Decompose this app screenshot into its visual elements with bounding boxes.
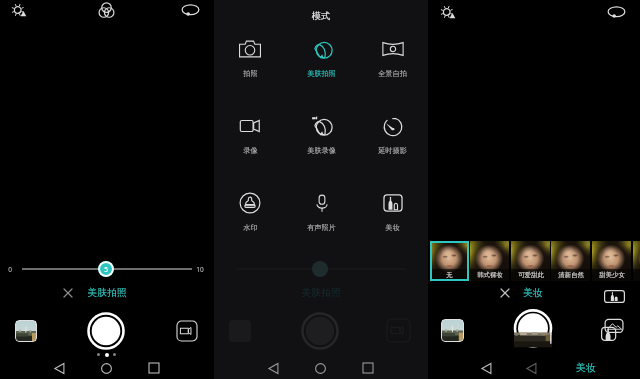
button[interactable]: Back xyxy=(51,360,67,376)
button[interactable]: Panorama mode xyxy=(180,0,201,21)
button[interactable]: Flash auto xyxy=(8,0,29,21)
staticText: 美肤拍照 xyxy=(307,69,336,78)
button[interactable]: Beauty level 5 xyxy=(98,261,114,277)
staticText: 5 xyxy=(104,265,108,274)
button[interactable]: Close beauty mode xyxy=(60,285,76,301)
button[interactable]: 美妆 xyxy=(523,287,543,299)
button[interactable]: 美妆 xyxy=(357,192,428,236)
staticText: 0 xyxy=(8,265,12,274)
button[interactable]: 录像 xyxy=(214,115,286,159)
staticText: 美妆 xyxy=(385,223,400,232)
button[interactable]: 韩式裸妆 xyxy=(470,241,509,281)
staticText: 韩式裸妆 xyxy=(477,271,503,279)
staticText: 录像 xyxy=(243,146,258,155)
button[interactable]: 清新自然 xyxy=(551,241,590,281)
button[interactable]: Back xyxy=(523,360,539,376)
button[interactable]: Recents xyxy=(146,360,162,376)
button[interactable]: Back xyxy=(478,360,494,376)
button[interactable]: Recents xyxy=(360,360,376,376)
button[interactable]: Home xyxy=(98,360,114,376)
staticText: 模式 xyxy=(312,10,330,21)
button[interactable]: Panorama mode xyxy=(605,1,627,23)
staticText: 10 xyxy=(196,265,204,274)
staticText: 延时摄影 xyxy=(378,146,407,155)
button[interactable]: Home xyxy=(312,360,328,376)
staticText: 可爱甜此 xyxy=(518,271,544,279)
button[interactable]: Colour filter xyxy=(96,0,117,21)
button[interactable]: 美肤拍照 xyxy=(286,38,357,82)
button[interactable]: Flash auto xyxy=(436,1,458,23)
button[interactable]: 无 xyxy=(430,241,469,281)
button[interactable]: 延时摄影 xyxy=(357,115,428,159)
staticText: 全景自拍 xyxy=(378,69,407,78)
button[interactable]: 拍照 xyxy=(214,38,286,82)
button[interactable]: Switch to video xyxy=(176,320,198,342)
button[interactable]: 全景自拍 xyxy=(357,38,428,82)
button[interactable]: 水印 xyxy=(214,192,286,236)
staticText: 清新自然 xyxy=(558,271,584,279)
button[interactable]: 自然 xyxy=(633,241,640,281)
staticText: 有声照片 xyxy=(307,223,336,232)
button[interactable]: 可爱甜此 xyxy=(511,241,550,281)
button[interactable]: 美肤拍照 xyxy=(87,287,127,299)
button[interactable]: 美肤录像 xyxy=(286,115,357,159)
button[interactable]: Gallery xyxy=(441,319,464,342)
button[interactable]: Close makeup xyxy=(497,285,513,301)
button[interactable]: Shutter xyxy=(511,309,555,353)
staticText: 水印 xyxy=(243,223,258,232)
button[interactable]: Back xyxy=(265,360,281,376)
button[interactable]: 有声照片 xyxy=(286,192,357,236)
button[interactable]: Shutter xyxy=(86,311,126,351)
staticText: 甜美少女 xyxy=(599,271,625,279)
button[interactable]: Makeup styles xyxy=(604,290,625,303)
staticText: 无 xyxy=(446,271,453,279)
staticText: 拍照 xyxy=(243,69,258,78)
button[interactable]: Gallery xyxy=(15,320,37,342)
button[interactable]: Switch mode xyxy=(600,317,627,343)
button[interactable]: 美妆 xyxy=(576,361,596,374)
button[interactable]: 甜美少女 xyxy=(592,241,631,281)
staticText: 美肤拍照 xyxy=(301,287,341,299)
staticText: 美肤录像 xyxy=(307,146,336,155)
